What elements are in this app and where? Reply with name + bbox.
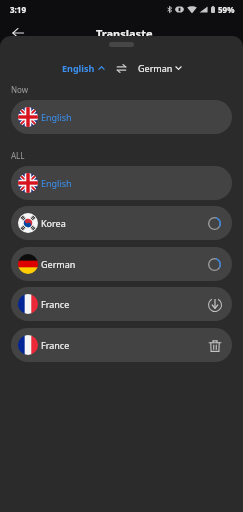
staticText: 59%	[218, 4, 235, 15]
staticText: France	[41, 298, 70, 310]
button[interactable]: Korea	[11, 206, 232, 240]
button[interactable]: Download	[207, 297, 222, 312]
staticText: English	[62, 62, 95, 74]
button[interactable]: English	[62, 62, 105, 74]
button[interactable]: Swap languages	[115, 62, 128, 75]
staticText: 3:19	[10, 4, 26, 15]
button[interactable]: English	[11, 166, 232, 200]
button[interactable]: German	[138, 62, 182, 74]
other: Downloading	[207, 257, 222, 272]
staticText: France	[41, 339, 70, 351]
staticText: Translaste	[96, 26, 153, 41]
button[interactable]: English	[11, 100, 232, 134]
staticText: English	[41, 111, 72, 123]
staticText: German	[138, 62, 173, 74]
staticText: Korea	[41, 217, 66, 229]
staticText: German	[41, 258, 76, 270]
button[interactable]: France	[11, 328, 232, 362]
button[interactable]: Delete	[207, 338, 222, 353]
other: Downloading	[207, 216, 222, 231]
staticText: ALL	[11, 150, 25, 159]
button[interactable]: France	[11, 287, 232, 321]
button[interactable]: German	[11, 247, 232, 281]
button[interactable]: Back	[6, 21, 30, 45]
staticText: English	[41, 177, 72, 189]
staticText: Now	[11, 84, 29, 93]
